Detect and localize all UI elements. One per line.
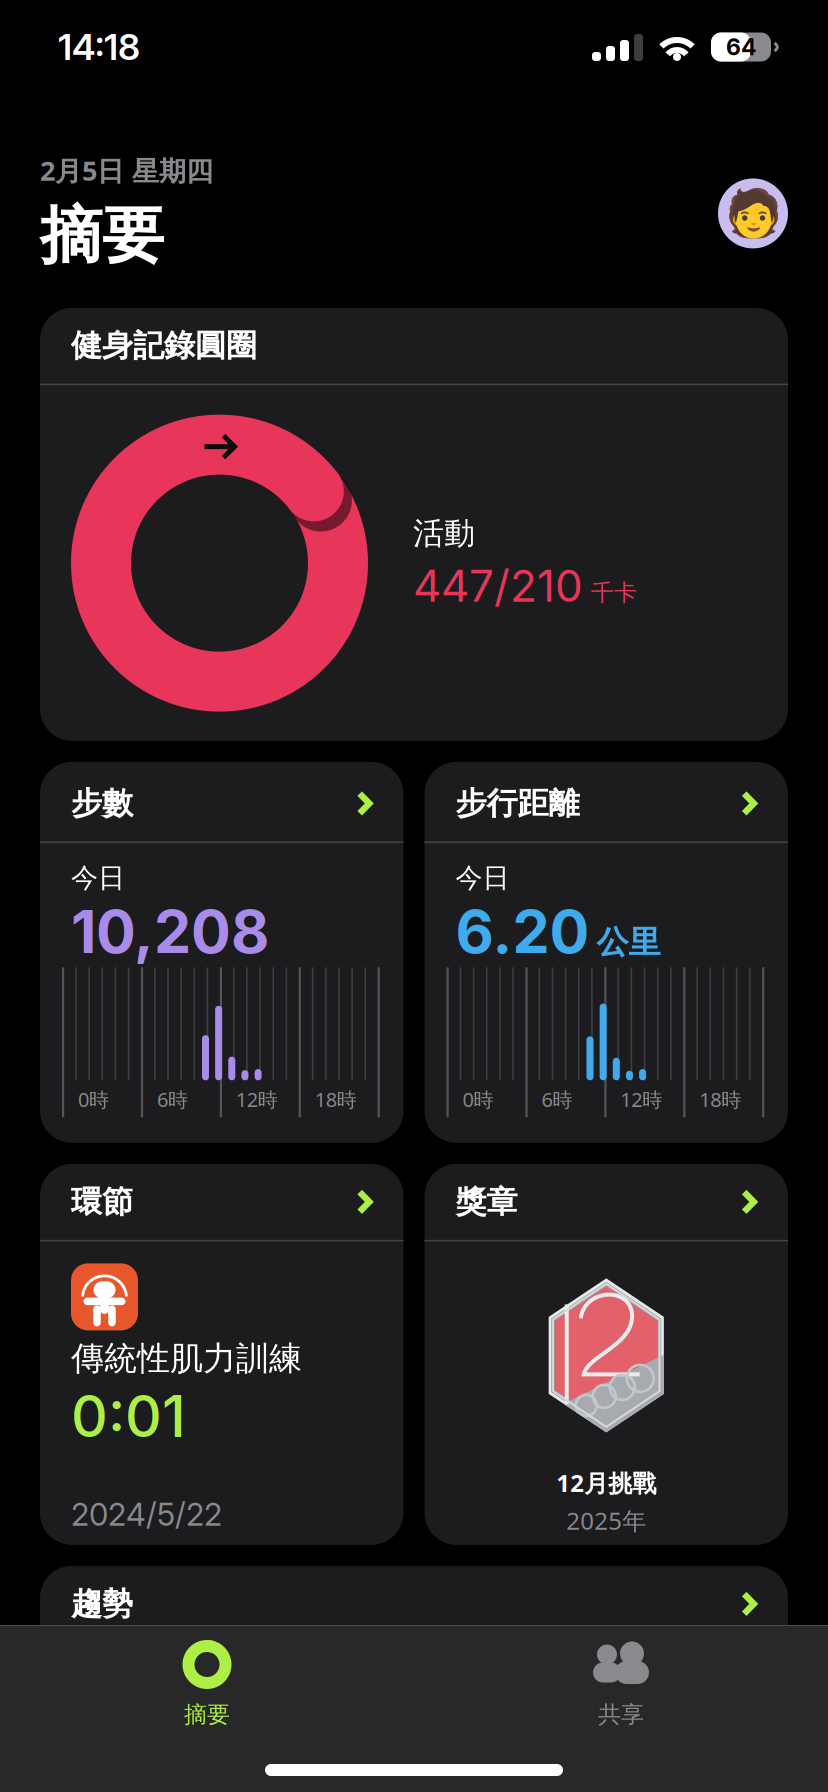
staticText: 步數 xyxy=(71,784,133,823)
staticText: 10,208 xyxy=(71,896,269,967)
staticText: 步行距離 xyxy=(455,784,579,823)
button[interactable]: 健身記錄圓圈 xyxy=(40,308,788,741)
button[interactable]: 步行距離 xyxy=(424,762,788,1143)
staticText: 千卡 xyxy=(591,578,637,607)
staticText: 2025年 xyxy=(566,1504,646,1537)
staticText: 0:01 xyxy=(71,1382,186,1451)
staticText: 傳統性肌力訓練 xyxy=(71,1338,302,1379)
button[interactable]: 個人檔案 xyxy=(718,178,788,248)
staticText: 公里 xyxy=(596,922,660,963)
staticText: 12月挑戰 xyxy=(556,1466,656,1499)
staticText: 14:18 xyxy=(58,25,140,69)
staticText: 12時 xyxy=(236,1086,278,1113)
staticText: 64 xyxy=(726,33,756,61)
staticText: 獎章 xyxy=(455,1182,517,1221)
staticText: 0時 xyxy=(462,1086,493,1113)
staticText: 環節 xyxy=(71,1182,133,1221)
staticText: 18時 xyxy=(315,1086,357,1113)
button[interactable]: 摘要 xyxy=(0,1626,414,1729)
staticText: 摘要 xyxy=(184,1700,230,1729)
staticText: 6.20 xyxy=(455,896,589,967)
staticText: 共享 xyxy=(598,1700,644,1729)
staticText: 447/210 xyxy=(413,559,583,612)
button[interactable]: 步數 xyxy=(40,762,403,1143)
staticText: 今日 xyxy=(455,861,509,895)
staticText: 今日 xyxy=(71,861,125,895)
staticText: 健身記錄圓圈 xyxy=(71,326,257,365)
button[interactable]: 獎章 xyxy=(424,1164,788,1545)
staticText: 2月5日 星期四 xyxy=(40,152,213,189)
button[interactable]: 環節 xyxy=(40,1164,403,1545)
staticText: 0時 xyxy=(78,1086,109,1113)
button[interactable]: 共享 xyxy=(414,1626,828,1729)
staticText: 12時 xyxy=(620,1086,662,1113)
staticText: 趨勢 xyxy=(71,1584,133,1623)
staticText: 6時 xyxy=(541,1086,572,1113)
staticText: 🧑 xyxy=(724,186,781,240)
staticText: 18時 xyxy=(699,1086,741,1113)
button[interactable]: 趨勢 xyxy=(40,1566,788,1766)
staticText: 2024/5/22 xyxy=(71,1496,222,1533)
staticText: 6時 xyxy=(157,1086,188,1113)
staticText: 摘要 xyxy=(40,197,164,275)
staticText: 活動 xyxy=(413,514,475,553)
